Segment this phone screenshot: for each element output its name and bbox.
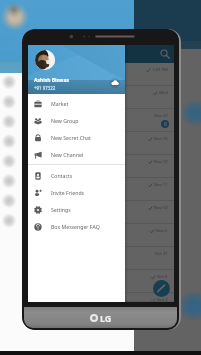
button[interactable]: New Group — [28, 112, 125, 129]
button[interactable]: New message — [153, 280, 170, 297]
staticText: Nov 12 — [154, 159, 168, 165]
button[interactable]: New Channel — [28, 146, 125, 163]
staticText: Ashish Biswas — [34, 77, 69, 84]
button[interactable]: Nov 5 — [28, 224, 174, 247]
staticText: online — [58, 85, 71, 91]
button[interactable]: Nov 12 — [28, 155, 174, 178]
staticText: Oct 8 — [157, 274, 168, 280]
button[interactable]: Nov 11 — [28, 178, 174, 201]
button[interactable]: New Secret Chat — [28, 129, 125, 146]
staticText: 6 — [164, 121, 167, 128]
staticText: New Secret Chat — [51, 134, 91, 141]
staticText: Wed — [159, 90, 168, 96]
staticText: LG — [100, 312, 112, 324]
staticText: Invite Friends — [51, 189, 85, 196]
button[interactable]: Sep 2 — [28, 293, 174, 302]
button[interactable]: Nov 23 — [28, 109, 174, 132]
button[interactable]: Market — [28, 95, 125, 112]
button[interactable]: 1:25 PM — [28, 63, 174, 86]
staticText: Nov 11 — [154, 182, 168, 188]
button[interactable]: Profile photo — [35, 50, 55, 70]
staticText: Nov 5 — [156, 228, 168, 234]
staticText: Contacts — [51, 172, 73, 179]
staticText: New Group — [51, 117, 79, 124]
button[interactable]: Settings — [28, 201, 125, 218]
staticText: Oct 31 — [155, 251, 168, 257]
button[interactable]: Box Messenger FAQ — [28, 218, 125, 235]
staticText: Nov 23 — [154, 113, 168, 119]
button[interactable]: Wed — [28, 86, 174, 109]
staticText: Market — [51, 100, 69, 107]
staticText: Nov 15 — [154, 136, 168, 142]
button[interactable]: Cloud — [109, 77, 121, 89]
button[interactable]: Oct 31 — [28, 247, 174, 270]
staticText: +91 97322 — [34, 85, 56, 91]
staticText: 1:25 PM — [152, 67, 168, 73]
staticText: New Channel — [51, 151, 84, 158]
button[interactable]: Nov 15 — [28, 132, 174, 155]
button[interactable]: Contacts — [28, 167, 125, 184]
staticText: Sep 2 — [157, 297, 168, 303]
staticText: Settings — [51, 206, 71, 213]
button[interactable]: Search — [159, 48, 171, 60]
button[interactable]: Nov 10 — [28, 201, 174, 224]
button[interactable]: Oct 8 — [28, 270, 174, 293]
button[interactable]: Invite Friends — [28, 184, 125, 201]
staticText: Nov 10 — [154, 205, 168, 211]
staticText: Box Messenger FAQ — [51, 223, 100, 230]
